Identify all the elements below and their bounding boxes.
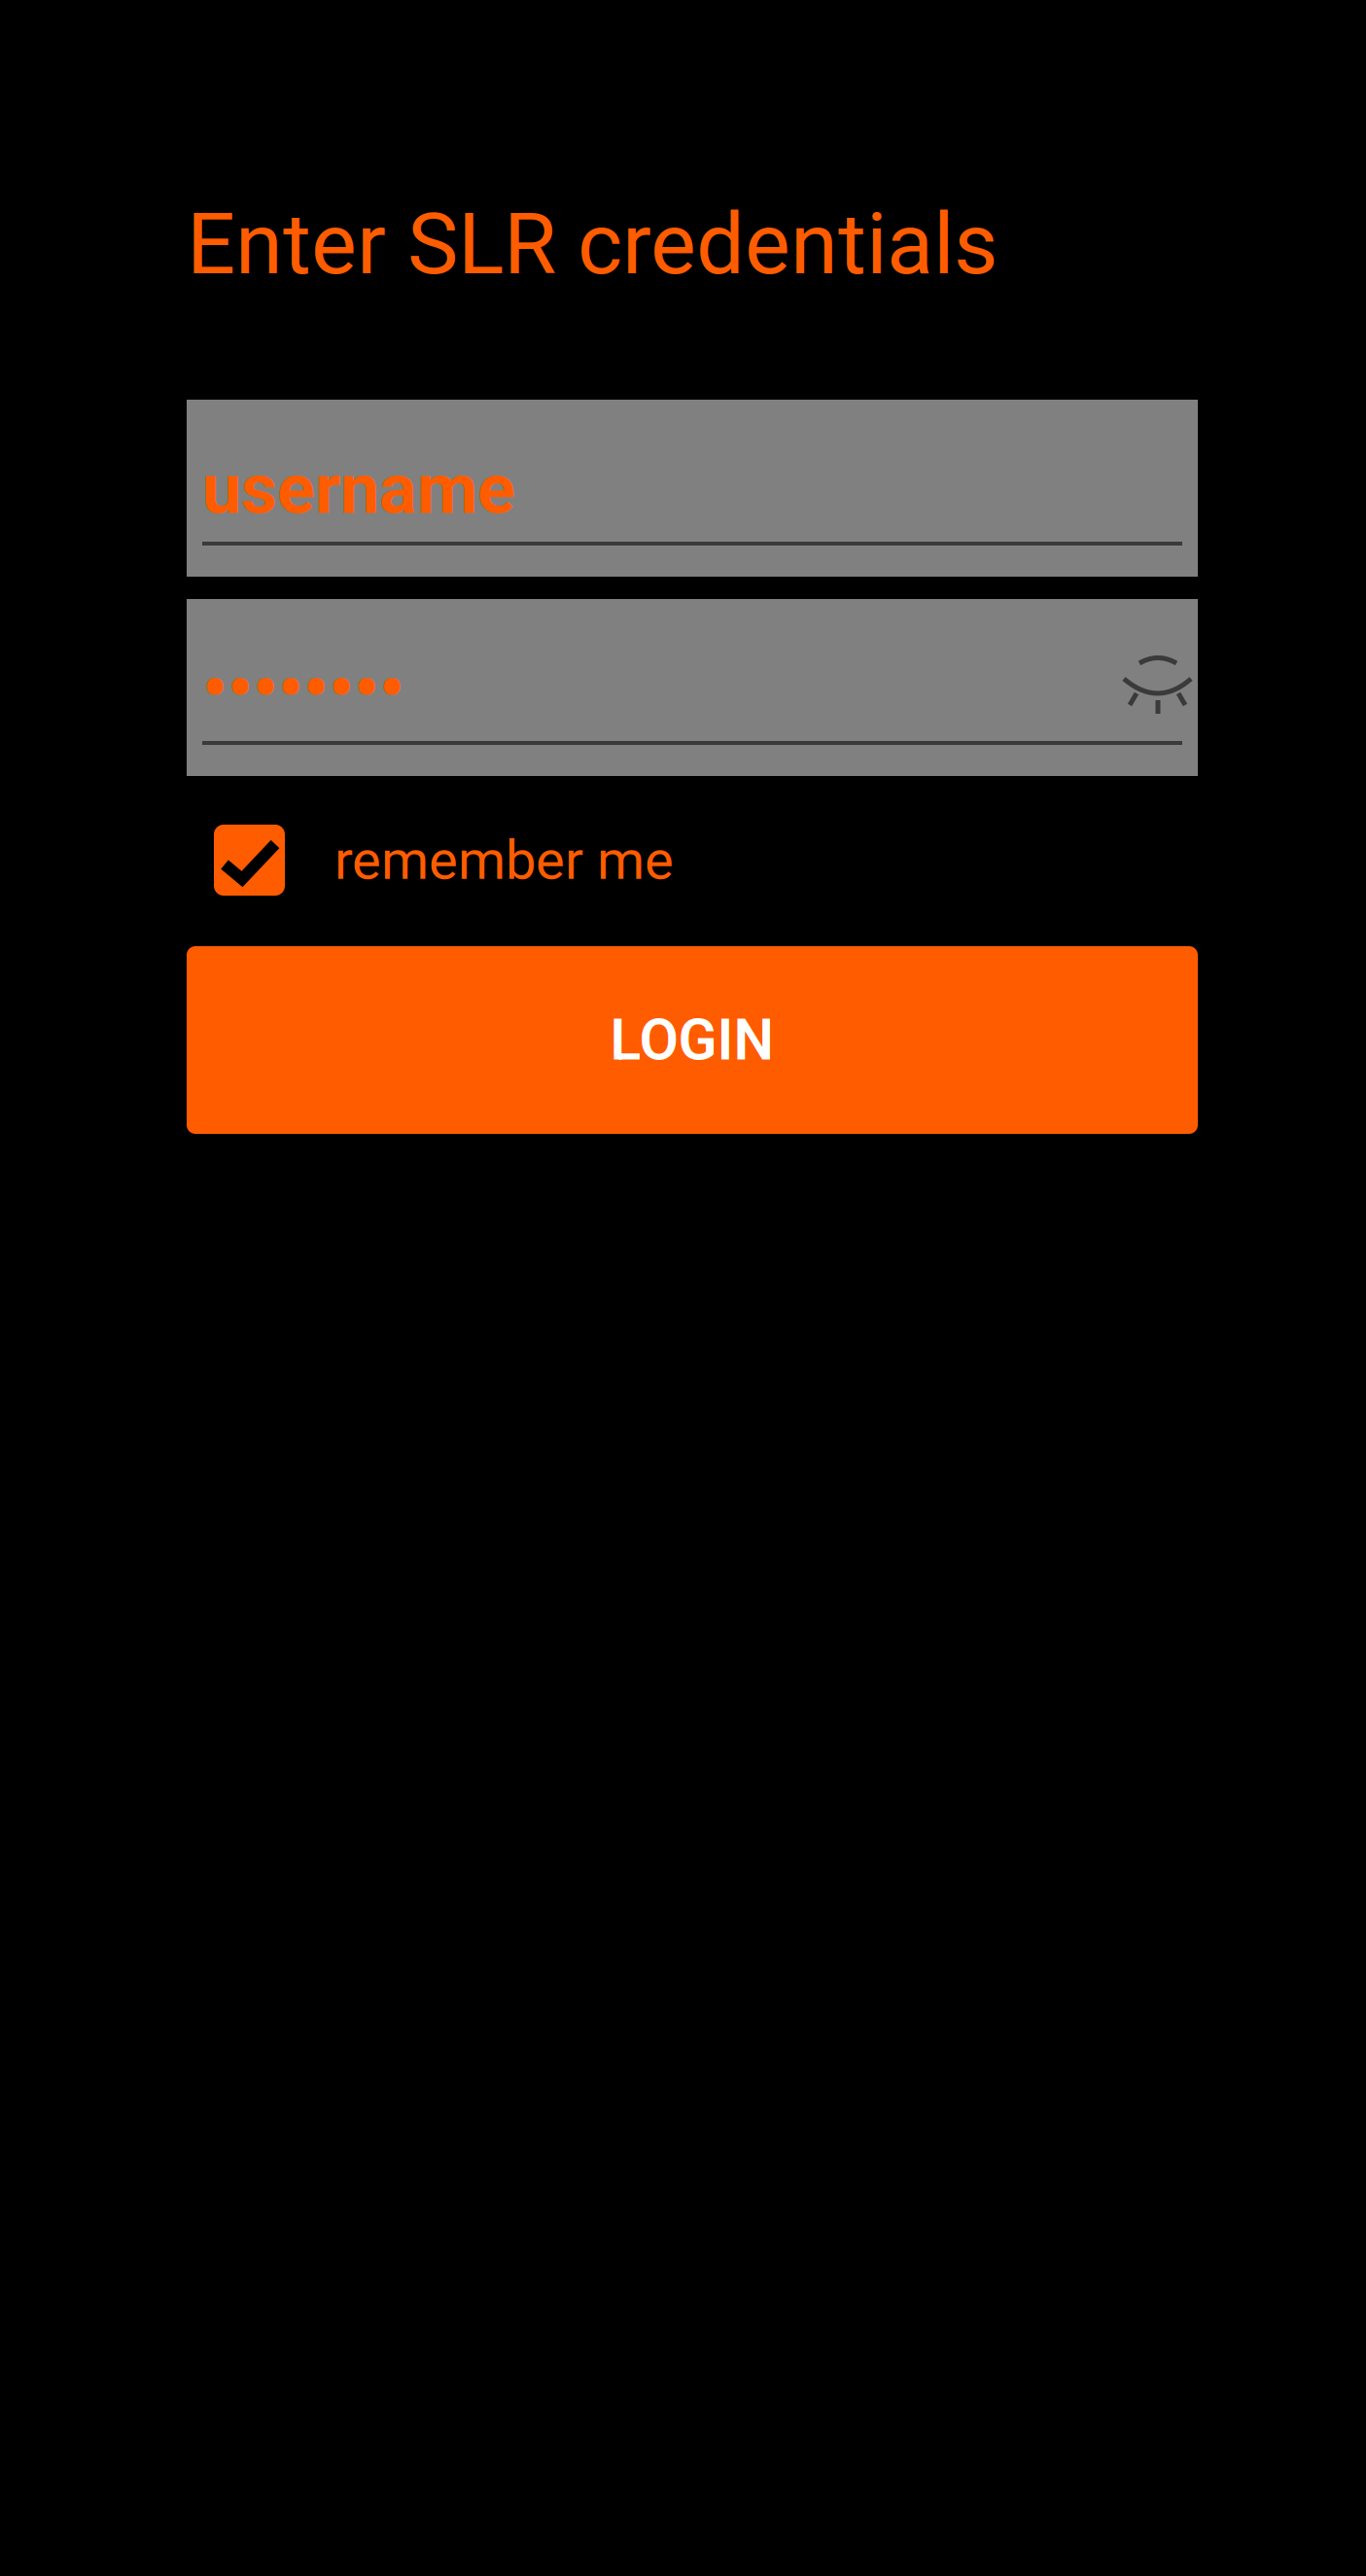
button[interactable]: remember me bbox=[214, 825, 1225, 896]
staticText: LOGIN bbox=[610, 1007, 774, 1073]
staticText: username bbox=[202, 448, 515, 530]
button[interactable]: Show password bbox=[1116, 646, 1194, 716]
staticText: remember me bbox=[334, 828, 674, 892]
button[interactable]: Password bbox=[187, 599, 1198, 776]
button[interactable]: username bbox=[187, 400, 1198, 577]
staticText: •••••••• bbox=[202, 647, 404, 730]
button[interactable]: LOGIN bbox=[187, 946, 1198, 1134]
staticText: Enter SLR credentials bbox=[187, 194, 998, 294]
